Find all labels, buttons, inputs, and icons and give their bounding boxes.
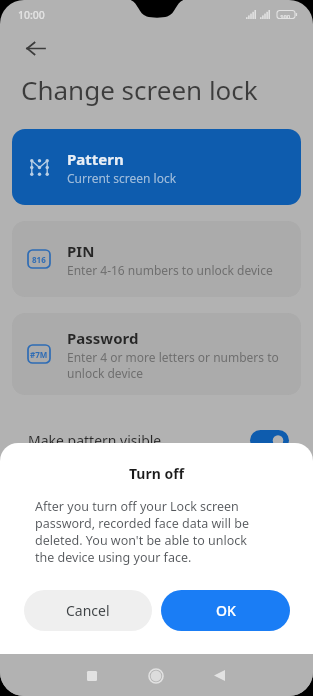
button[interactable]: OK [161,590,290,631]
staticText: 816 [32,254,46,265]
staticText: After you turn off your Lock screen pass… [35,498,257,566]
button[interactable]: #7M [12,313,301,395]
button[interactable]: Make pattern visible [250,430,289,451]
staticText: Make pattern visible [28,431,162,450]
staticText: Pattern [67,149,124,169]
staticText: PIN [67,241,95,261]
staticText: Cancel [66,601,110,620]
staticText: Enter 4-16 numbers to unlock device [67,262,273,278]
button[interactable]: Cancel [24,590,152,631]
button[interactable]: Home [138,658,173,693]
button[interactable]: 816 [12,221,301,297]
button[interactable]: Pattern [12,129,301,205]
staticText: 10:00 [18,8,45,22]
staticText: Password [67,328,139,348]
staticText: Enter 4 or more letters or numbers to un… [67,349,279,381]
staticText: 100 [280,13,291,21]
button[interactable]: Back [14,27,56,69]
staticText: Current screen lock [67,170,177,186]
staticText: Turn off [0,464,313,483]
button[interactable]: Back [202,658,237,693]
button[interactable]: Recents [74,658,109,693]
staticText: OK [216,601,236,620]
staticText: #7M [30,349,48,360]
staticText: Change screen lock [21,72,258,107]
button[interactable]: Make pattern visible [0,416,313,464]
